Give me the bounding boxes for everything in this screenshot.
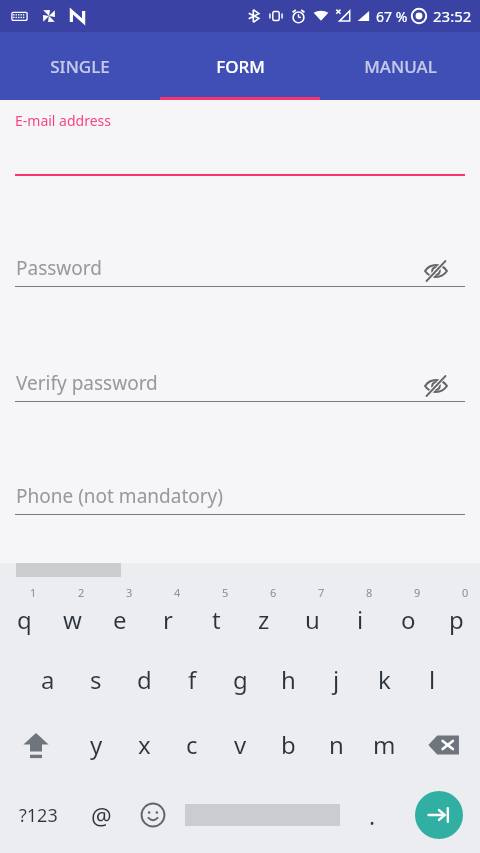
button[interactable]: Backspace [408, 712, 480, 777]
staticText: h [281, 663, 296, 696]
button[interactable]: m [360, 712, 408, 777]
button[interactable]: s [72, 647, 120, 712]
staticText: u [305, 603, 320, 636]
staticText: b [281, 728, 296, 761]
staticText: 6 [270, 585, 277, 600]
button[interactable]: 9 [384, 581, 432, 647]
staticText: 1 [30, 585, 37, 600]
staticText: ?123 [19, 803, 58, 828]
staticText: 8 [366, 585, 373, 600]
staticText: f [188, 663, 197, 696]
staticText: . [369, 800, 376, 831]
staticText: x [138, 728, 151, 761]
staticText: d [137, 663, 152, 696]
button[interactable]: SINGLE [0, 32, 160, 100]
button[interactable]: . [347, 777, 398, 853]
staticText: r [163, 603, 173, 636]
button[interactable]: Verify password [0, 370, 480, 415]
button[interactable]: d [120, 647, 168, 712]
button[interactable]: a [24, 647, 72, 712]
staticText: e [113, 603, 127, 636]
button[interactable]: k [360, 647, 408, 712]
button[interactable]: ?123 [0, 777, 76, 853]
staticText: j [333, 663, 340, 696]
staticText: s [90, 663, 102, 696]
staticText: v [234, 728, 247, 761]
button[interactable]: 3 [96, 581, 144, 647]
staticText: g [233, 663, 248, 696]
staticText: FORM [216, 55, 265, 78]
staticText: t [212, 603, 221, 636]
staticText: Phone (not mandatory) [16, 483, 223, 509]
button[interactable]: 1 [0, 581, 48, 647]
button[interactable]: MANUAL [320, 32, 480, 100]
button[interactable]: 0 [432, 581, 480, 647]
button[interactable]: 6 [240, 581, 288, 647]
button[interactable]: Toggle password visibility [418, 368, 454, 404]
button[interactable]: g [216, 647, 264, 712]
staticText: 7 [318, 585, 325, 600]
button[interactable]: Next [398, 777, 480, 853]
staticText: i [357, 603, 364, 636]
button[interactable]: x [120, 712, 168, 777]
staticText: q [17, 603, 32, 636]
staticText: SINGLE [50, 55, 110, 78]
staticText: k [378, 663, 391, 696]
staticText: c [186, 728, 198, 761]
button[interactable]: 8 [336, 581, 384, 647]
staticText: 4 [174, 585, 181, 600]
staticText: MANUAL [364, 55, 437, 78]
staticText: m [373, 728, 396, 761]
button[interactable]: j [312, 647, 360, 712]
staticText: 9 [414, 585, 421, 600]
staticText: 0 [462, 585, 469, 600]
button[interactable]: c [168, 712, 216, 777]
staticText: 5 [222, 585, 229, 600]
staticText: o [401, 603, 416, 636]
staticText: w [63, 603, 82, 636]
button[interactable]: v [216, 712, 264, 777]
staticText: z [258, 603, 270, 636]
staticText: Password [16, 255, 102, 281]
button[interactable]: l [408, 647, 456, 712]
button[interactable]: f [168, 647, 216, 712]
button[interactable]: 2 [48, 581, 96, 647]
button[interactable]: Space [178, 777, 347, 853]
button[interactable]: h [264, 647, 312, 712]
button[interactable]: 5 [192, 581, 240, 647]
button[interactable]: Phone (not mandatory) [0, 483, 480, 528]
button[interactable]: 4 [144, 581, 192, 647]
staticText: Verify password [16, 370, 158, 396]
staticText: 23:52 [433, 6, 472, 26]
staticText: a [41, 663, 55, 696]
staticText: @ [91, 800, 112, 831]
staticText: 3 [126, 585, 133, 600]
staticText: l [429, 663, 436, 696]
staticText: y [90, 728, 103, 761]
staticText: E-mail address [15, 111, 111, 130]
staticText: 2 [78, 585, 85, 600]
button[interactable]: @ [76, 777, 127, 853]
button[interactable]: n [312, 712, 360, 777]
button[interactable]: y [72, 712, 120, 777]
button[interactable]: FORM [160, 32, 320, 100]
staticText: p [449, 603, 464, 636]
staticText: 67 % [376, 7, 408, 26]
staticText: n [329, 728, 344, 761]
button[interactable]: Emoji [127, 777, 178, 853]
button[interactable]: b [264, 712, 312, 777]
button[interactable]: 7 [288, 581, 336, 647]
button[interactable]: Toggle password visibility [418, 253, 454, 289]
button[interactable]: Password [0, 255, 480, 300]
button[interactable]: Shift [0, 712, 72, 777]
